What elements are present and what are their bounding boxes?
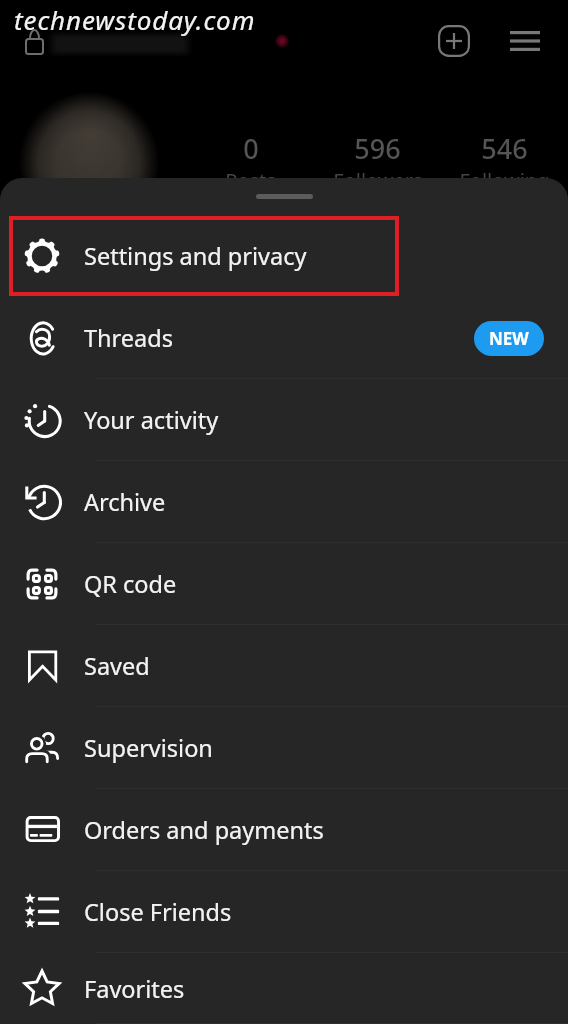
button[interactable]: New post [434, 21, 474, 61]
staticText: Favorites [84, 973, 185, 1005]
button[interactable]: Your activity [0, 379, 568, 461]
staticText: Threads [84, 322, 173, 354]
staticText: Your activity [84, 404, 219, 436]
button[interactable]: NEW [474, 321, 544, 356]
staticText: Settings and privacy [84, 240, 307, 272]
button[interactable]: Close Friends [0, 871, 568, 953]
staticText: Following [459, 167, 550, 194]
button[interactable]: Saved [0, 625, 568, 707]
button[interactable]: QR code [0, 543, 568, 625]
button[interactable]: Orders and payments [0, 789, 568, 871]
staticText: Supervision [84, 732, 213, 764]
staticText: Followers [333, 167, 423, 194]
staticText: technewstoday.com [14, 2, 256, 37]
staticText: Posts [225, 167, 276, 194]
button[interactable]: 546 [441, 130, 568, 194]
staticText: Orders and payments [84, 814, 324, 846]
button[interactable]: Settings and privacy [0, 215, 568, 297]
button[interactable]: Archive [0, 461, 568, 543]
staticText: QR code [84, 568, 177, 600]
button[interactable]: 0 [187, 130, 314, 194]
staticText: 596 [354, 130, 401, 167]
staticText: 546 [481, 130, 528, 167]
staticText: Archive [84, 486, 166, 518]
button[interactable]: 596 [314, 130, 441, 194]
staticText: Close Friends [84, 896, 232, 928]
staticText: 0 [243, 130, 259, 167]
button[interactable]: Supervision [0, 707, 568, 789]
button[interactable]: Favorites [0, 953, 568, 1024]
staticText: Saved [84, 650, 150, 682]
staticText: NEW [489, 327, 529, 350]
button[interactable]: Menu [505, 21, 545, 61]
button[interactable]: Threads [0, 297, 568, 379]
